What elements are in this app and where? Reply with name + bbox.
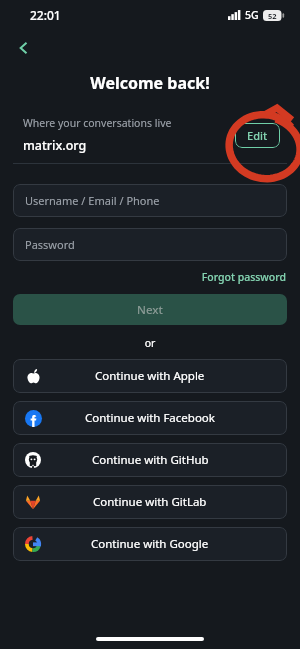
staticText: Welcome back! xyxy=(0,72,300,94)
button[interactable]: Continue with Apple xyxy=(13,359,287,393)
staticText: Edit xyxy=(247,128,268,143)
staticText: Next xyxy=(137,302,163,318)
button[interactable]: Continue with Facebook xyxy=(13,401,287,435)
staticText: Continue with Google xyxy=(91,536,209,552)
staticText: 5G xyxy=(245,8,259,22)
button[interactable]: Continue with GitLab xyxy=(13,485,287,519)
staticText: Continue with Facebook xyxy=(85,410,215,426)
staticText: Continue with GitLab xyxy=(93,494,207,510)
staticText: Username / Email / Phone xyxy=(25,193,160,208)
button[interactable]: Password xyxy=(13,228,287,261)
staticText: or xyxy=(0,336,300,350)
staticText: Continue with GitHub xyxy=(92,452,209,468)
button[interactable]: Next xyxy=(13,294,287,325)
staticText: Password xyxy=(25,237,75,252)
staticText: 52 xyxy=(268,11,277,21)
button[interactable]: Back xyxy=(6,30,42,66)
button[interactable]: Forgot password xyxy=(0,270,300,284)
staticText: Where your conversations live xyxy=(23,116,172,130)
staticText: Continue with Apple xyxy=(95,368,205,384)
staticText: matrix.org xyxy=(23,137,87,154)
button[interactable]: Username / Email / Phone xyxy=(13,184,287,217)
button[interactable]: Continue with Google xyxy=(13,527,287,561)
button[interactable]: Continue with GitHub xyxy=(13,443,287,477)
staticText: 22:01 xyxy=(30,7,61,23)
button[interactable]: Edit xyxy=(235,123,280,148)
